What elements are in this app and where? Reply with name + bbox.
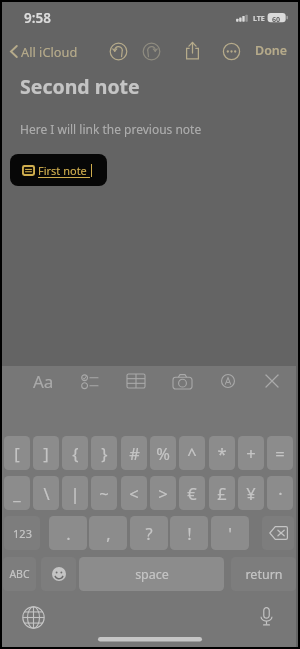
button[interactable]: 123 — [4, 516, 40, 550]
staticText: ¥ — [246, 482, 256, 504]
button[interactable]: ^ — [179, 436, 205, 470]
staticText: _ — [13, 482, 21, 504]
staticText: \ — [43, 482, 50, 504]
button[interactable]: ABC — [3, 557, 36, 591]
button[interactable]: return — [231, 557, 296, 591]
button[interactable]: Switch keyboard — [22, 606, 45, 629]
button[interactable]: First note — [10, 154, 107, 186]
button[interactable]: Markup — [210, 366, 246, 396]
button[interactable]: Share — [182, 40, 203, 61]
button[interactable]: Checklist — [71, 366, 107, 396]
button[interactable]: All iCloud — [8, 40, 80, 63]
button[interactable]: + — [238, 436, 264, 470]
staticText: All iCloud — [21, 43, 78, 60]
button[interactable]: ? — [130, 516, 168, 550]
button[interactable]: , — [89, 516, 127, 550]
button[interactable]: Format — [25, 366, 61, 396]
staticText: ] — [43, 442, 49, 464]
staticText: · — [278, 482, 283, 504]
button[interactable]: Dictation — [256, 606, 277, 627]
staticText: Done — [255, 42, 288, 59]
button[interactable]: * — [209, 436, 235, 470]
staticText: € — [187, 482, 197, 504]
button[interactable]: Table — [118, 366, 154, 396]
staticText: = — [275, 442, 285, 464]
staticText: ~ — [99, 482, 109, 504]
button[interactable]: ¥ — [238, 476, 264, 510]
staticText: < — [129, 482, 139, 504]
button[interactable]: > — [150, 476, 176, 510]
button[interactable]: % — [150, 436, 176, 470]
staticText: space — [135, 566, 169, 583]
staticText: | — [70, 482, 80, 504]
staticText: 123 — [13, 526, 32, 541]
staticText: # — [129, 442, 140, 464]
staticText: Here I will link the previous note — [20, 121, 202, 137]
button[interactable]: [ — [4, 436, 30, 470]
staticText: [ — [14, 442, 20, 464]
button[interactable]: Emoji — [41, 557, 76, 591]
button[interactable]: ' — [211, 516, 249, 550]
button[interactable]: ~ — [91, 476, 117, 510]
button[interactable]: € — [179, 476, 205, 510]
button[interactable]: | — [62, 476, 88, 510]
staticText: First note — [38, 163, 87, 178]
staticText: % — [156, 442, 170, 464]
staticText: , — [106, 522, 111, 544]
button[interactable]: space — [79, 557, 224, 591]
staticText: LTE — [253, 13, 265, 23]
staticText: + — [246, 442, 256, 464]
button[interactable]: ] — [33, 436, 59, 470]
button[interactable]: } — [91, 436, 117, 470]
button[interactable]: # — [121, 436, 147, 470]
staticText: { — [72, 442, 79, 464]
staticText: Second note — [20, 73, 140, 100]
button[interactable]: < — [121, 476, 147, 510]
button[interactable]: . — [49, 516, 87, 550]
staticText: > — [158, 482, 168, 504]
staticText: . — [66, 522, 71, 544]
button[interactable]: ! — [170, 516, 208, 550]
staticText: * — [217, 442, 227, 464]
staticText: ' — [228, 522, 232, 544]
button[interactable]: = — [267, 436, 293, 470]
button[interactable]: Redo — [141, 41, 162, 62]
staticText: ! — [187, 522, 192, 544]
button[interactable]: \ — [33, 476, 59, 510]
button[interactable]: { — [62, 436, 88, 470]
button[interactable]: Camera — [164, 366, 200, 396]
button[interactable]: · — [267, 476, 293, 510]
staticText: } — [101, 442, 108, 464]
staticText: ? — [145, 522, 153, 544]
button[interactable]: Close — [254, 366, 290, 396]
staticText: ^ — [187, 442, 197, 464]
staticText: 60 — [272, 14, 281, 24]
staticText: 9:58 — [24, 9, 51, 27]
button[interactable]: Backspace — [262, 516, 294, 550]
button[interactable]: £ — [209, 476, 235, 510]
button[interactable]: Done — [251, 40, 292, 61]
button[interactable]: _ — [4, 476, 30, 510]
button[interactable]: More — [221, 41, 242, 62]
staticText: ABC — [9, 567, 30, 581]
button[interactable]: Undo — [108, 41, 129, 62]
staticText: £ — [217, 482, 227, 504]
staticText: Aa — [33, 370, 54, 393]
staticText: return — [245, 566, 283, 583]
